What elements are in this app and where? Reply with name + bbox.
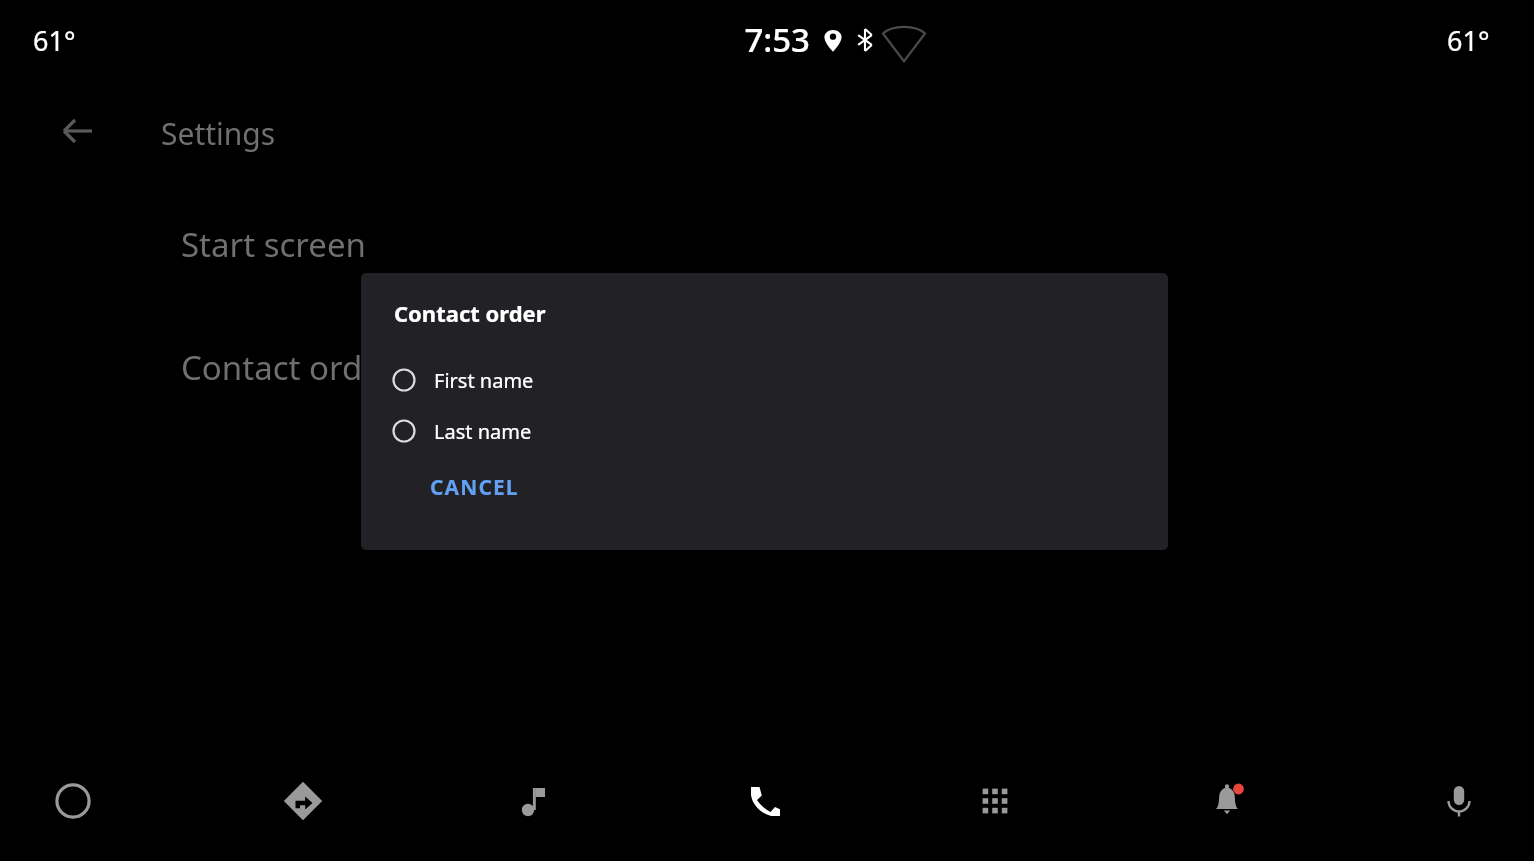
staticText: CANCEL [430,473,519,502]
staticText: 61° [1447,22,1490,59]
button[interactable]: Start screen [181,222,366,267]
button[interactable]: First name [377,358,877,402]
button[interactable]: Assistant [1426,761,1492,841]
staticText: Last name [434,418,532,445]
button[interactable]: Last name [377,409,877,453]
staticText: 61° [33,22,76,59]
button[interactable]: Contact order [181,345,395,390]
staticText: Settings [161,113,276,154]
button[interactable]: Notifications [1194,761,1260,841]
button[interactable]: Navigation [270,761,336,841]
button[interactable]: Media [500,761,566,841]
button[interactable]: CANCEL [414,463,535,511]
button[interactable]: Apps [962,761,1028,841]
button[interactable]: Back [48,101,108,161]
staticText: Contact order [394,298,546,328]
staticText: First name [434,367,534,394]
staticText: 7:53 [660,17,810,861]
button[interactable]: Phone [732,761,798,841]
button[interactable]: Home [40,761,106,841]
